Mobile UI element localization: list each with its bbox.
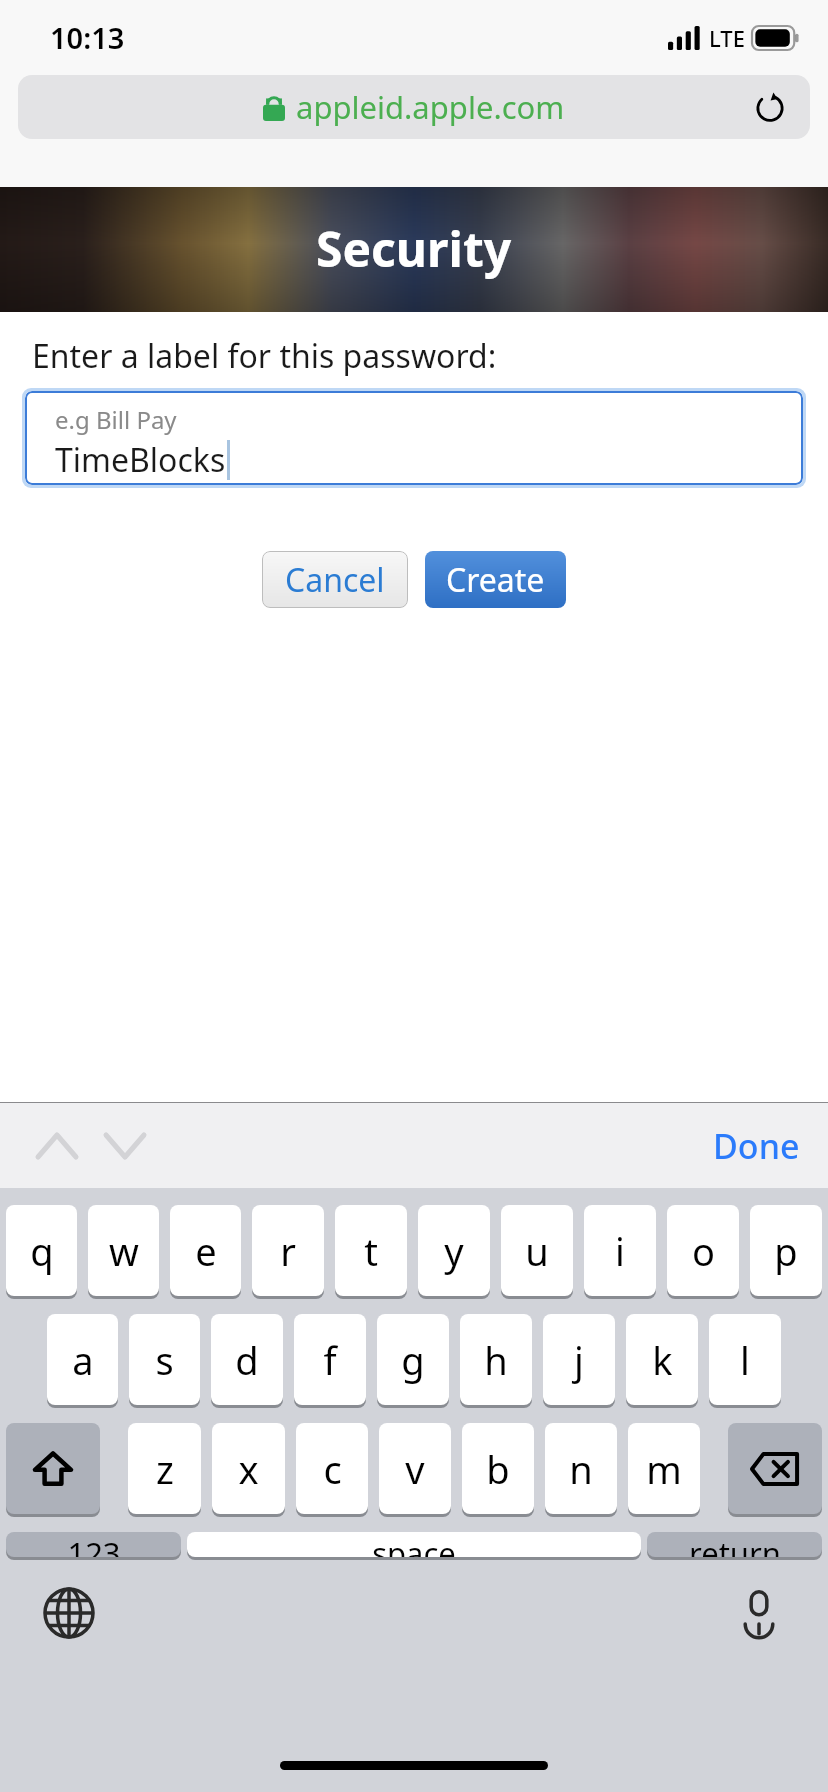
button[interactable]: 123 bbox=[6, 1532, 181, 1560]
button[interactable]: e bbox=[170, 1205, 241, 1299]
button[interactable]: Backspace bbox=[728, 1423, 822, 1517]
button[interactable]: u bbox=[501, 1205, 573, 1299]
staticText: 10:13 bbox=[50, 18, 125, 57]
button[interactable]: t bbox=[335, 1205, 407, 1299]
button[interactable]: d bbox=[211, 1314, 283, 1408]
staticText: return bbox=[689, 1532, 781, 1557]
staticText: c bbox=[323, 1443, 342, 1495]
staticText: r bbox=[280, 1225, 296, 1277]
staticText: y bbox=[444, 1225, 464, 1277]
staticText: s bbox=[155, 1334, 174, 1386]
staticText: l bbox=[740, 1334, 750, 1386]
staticText: a bbox=[72, 1334, 94, 1386]
staticText: b bbox=[486, 1443, 510, 1495]
staticText: space bbox=[372, 1532, 456, 1557]
staticText: w bbox=[109, 1225, 139, 1277]
button[interactable]: n bbox=[545, 1423, 617, 1517]
button[interactable]: x bbox=[212, 1423, 285, 1517]
button[interactable]: a bbox=[47, 1314, 118, 1408]
button[interactable]: r bbox=[252, 1205, 324, 1299]
staticText: e bbox=[195, 1225, 217, 1277]
button[interactable]: appleid.apple.com bbox=[18, 75, 810, 139]
staticText: LTE bbox=[709, 23, 745, 53]
staticText: 123 bbox=[67, 1532, 121, 1557]
button[interactable]: Shift bbox=[6, 1423, 100, 1517]
button[interactable]: v bbox=[379, 1423, 451, 1517]
button[interactable]: Next field bbox=[96, 1117, 154, 1175]
button[interactable]: b bbox=[462, 1423, 534, 1517]
staticText: Cancel bbox=[285, 558, 385, 602]
button[interactable]: w bbox=[88, 1205, 159, 1299]
button[interactable]: k bbox=[626, 1314, 698, 1408]
button[interactable]: c bbox=[296, 1423, 368, 1517]
staticText: TimeBlocks bbox=[55, 438, 226, 482]
staticText: i bbox=[615, 1225, 625, 1277]
staticText: Done bbox=[713, 1123, 800, 1169]
staticText: q bbox=[30, 1225, 54, 1277]
button[interactable]: p bbox=[750, 1205, 822, 1299]
button[interactable]: Dictate bbox=[720, 1574, 798, 1652]
staticText: n bbox=[569, 1443, 593, 1495]
staticText: f bbox=[323, 1334, 337, 1386]
button[interactable]: Cancel bbox=[262, 551, 408, 608]
staticText: u bbox=[525, 1225, 549, 1277]
button[interactable]: e.g Bill Pay bbox=[25, 391, 803, 485]
staticText: Enter a label for this password: bbox=[32, 334, 497, 378]
button[interactable]: z bbox=[128, 1423, 201, 1517]
button[interactable]: j bbox=[543, 1314, 615, 1408]
staticText: k bbox=[652, 1334, 673, 1386]
button[interactable]: Create bbox=[425, 551, 566, 608]
staticText: v bbox=[405, 1443, 425, 1495]
staticText: t bbox=[364, 1225, 378, 1277]
staticText: m bbox=[646, 1443, 682, 1495]
button[interactable]: s bbox=[129, 1314, 200, 1408]
staticText: Create bbox=[446, 558, 545, 602]
button[interactable]: q bbox=[6, 1205, 77, 1299]
button[interactable]: space bbox=[187, 1532, 641, 1560]
button[interactable]: f bbox=[294, 1314, 366, 1408]
staticText: g bbox=[401, 1334, 425, 1386]
staticText: appleid.apple.com bbox=[296, 86, 565, 128]
staticText: o bbox=[692, 1225, 715, 1277]
button[interactable]: i bbox=[584, 1205, 656, 1299]
staticText: x bbox=[238, 1443, 259, 1495]
button[interactable]: y bbox=[418, 1205, 490, 1299]
button[interactable]: Done bbox=[703, 1115, 810, 1177]
button[interactable]: m bbox=[628, 1423, 700, 1517]
button[interactable]: o bbox=[667, 1205, 739, 1299]
staticText: d bbox=[235, 1334, 259, 1386]
staticText: Security bbox=[316, 216, 512, 281]
staticText: z bbox=[156, 1443, 174, 1495]
staticText: h bbox=[484, 1334, 508, 1386]
staticText: p bbox=[774, 1225, 798, 1277]
staticText: e.g Bill Pay bbox=[55, 403, 177, 436]
button[interactable]: Reload bbox=[744, 81, 796, 133]
button[interactable]: g bbox=[377, 1314, 449, 1408]
button[interactable]: Change keyboard bbox=[30, 1574, 108, 1652]
staticText: j bbox=[574, 1334, 584, 1386]
button[interactable]: l bbox=[709, 1314, 781, 1408]
button[interactable]: return bbox=[647, 1532, 822, 1560]
button[interactable]: h bbox=[460, 1314, 532, 1408]
button[interactable]: Previous field bbox=[28, 1117, 86, 1175]
